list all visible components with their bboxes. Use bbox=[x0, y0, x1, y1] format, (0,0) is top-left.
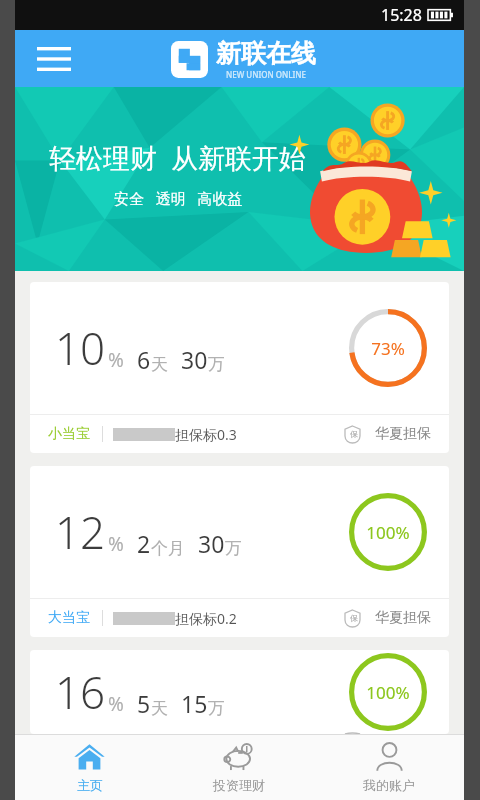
button[interactable]: 主页 bbox=[15, 735, 164, 800]
staticText: 天 bbox=[151, 698, 168, 719]
button[interactable]: 投资理财 bbox=[164, 735, 314, 800]
staticText: % bbox=[108, 691, 124, 717]
staticText: 2 bbox=[137, 528, 151, 559]
staticText: 轻松理财 从新联开始 bbox=[49, 139, 307, 176]
staticText: 万 bbox=[225, 538, 242, 559]
button[interactable]: 12 bbox=[30, 466, 449, 637]
staticText: 小当宝 bbox=[48, 425, 90, 443]
staticText: 个月 bbox=[151, 538, 185, 559]
staticText: 投资理财 bbox=[213, 777, 265, 793]
staticText: 担保标0.2 bbox=[175, 609, 237, 628]
button[interactable]: 我的账户 bbox=[314, 735, 464, 800]
staticText: 大当宝 bbox=[48, 609, 90, 627]
staticText: 16 bbox=[55, 662, 106, 722]
staticText: 5 bbox=[137, 688, 151, 719]
staticText: 我的账户 bbox=[363, 777, 415, 793]
staticText: 15 bbox=[181, 688, 208, 719]
staticText: % bbox=[108, 531, 124, 557]
staticText: NEW UNION ONLINE bbox=[226, 69, 307, 80]
staticText: 15:28 bbox=[381, 4, 422, 26]
staticText: 华夏担保 bbox=[375, 425, 431, 443]
staticText: 保 bbox=[350, 613, 358, 623]
staticText: 12 bbox=[55, 502, 106, 562]
button[interactable]: 16 bbox=[30, 650, 449, 734]
staticText: 万 bbox=[208, 698, 225, 719]
staticText: 保 bbox=[350, 429, 358, 439]
staticText: 73% bbox=[371, 337, 405, 360]
staticText: 100% bbox=[366, 521, 410, 544]
staticText: 30 bbox=[198, 528, 225, 559]
staticText: 新联在线 bbox=[216, 38, 316, 69]
staticText: 30 bbox=[181, 344, 208, 375]
staticText: 华夏担保 bbox=[375, 609, 431, 627]
staticText: 担保标0.3 bbox=[175, 425, 237, 444]
staticText: 天 bbox=[151, 354, 168, 375]
button[interactable]: Menu bbox=[28, 37, 80, 81]
staticText: % bbox=[108, 347, 124, 373]
staticText: 主页 bbox=[77, 777, 103, 793]
staticText: 100% bbox=[366, 681, 410, 704]
button[interactable]: 10 bbox=[30, 282, 449, 453]
staticText: 万 bbox=[208, 354, 225, 375]
staticText: 6 bbox=[137, 344, 151, 375]
staticText: 10 bbox=[55, 318, 106, 378]
staticText: 安全 透明 高收益 bbox=[114, 188, 243, 208]
